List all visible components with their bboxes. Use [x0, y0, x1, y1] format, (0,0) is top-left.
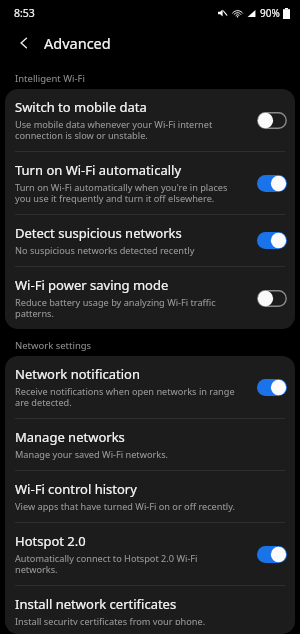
button[interactable]: Switch to mobile data: [5, 89, 295, 151]
staticText: Advanced: [44, 33, 111, 53]
staticText: Manage your saved Wi-Fi networks.: [15, 448, 169, 461]
staticText: View apps that have turned Wi-Fi on or o…: [15, 500, 235, 513]
button[interactable]: Toggle on: [257, 232, 287, 249]
staticText: Network notification: [15, 365, 140, 383]
button[interactable]: Toggle on: [257, 546, 287, 563]
staticText: 90%: [260, 6, 280, 20]
button[interactable]: Install network certificates: [5, 586, 295, 634]
staticText: Turn on Wi-Fi automatically when you're …: [15, 181, 228, 205]
staticText: Receive notifications when open networks…: [15, 385, 235, 409]
staticText: Install network certificates: [15, 595, 177, 613]
staticText: Reduce battery usage by analyzing Wi-Fi …: [15, 296, 216, 320]
staticText: Hotspot 2.0: [15, 532, 86, 550]
button[interactable]: Toggle on: [257, 175, 287, 192]
button[interactable]: Turn on Wi-Fi automatically: [5, 152, 295, 214]
button[interactable]: Back: [12, 31, 36, 55]
staticText: Wi-Fi control history: [15, 480, 137, 498]
staticText: Automatically connect to Hotspot 2.0 Wi-…: [15, 552, 198, 576]
staticText: Network settings: [15, 339, 92, 352]
button[interactable]: Wi-Fi power saving mode: [5, 267, 295, 329]
staticText: Switch to mobile data: [15, 98, 147, 116]
staticText: Detect suspicious networks: [15, 224, 182, 242]
staticText: Intelligent Wi-Fi: [15, 72, 85, 85]
button[interactable]: Toggle off: [257, 290, 287, 307]
button[interactable]: Network notification: [5, 356, 295, 418]
staticText: Use mobile data whenever your Wi-Fi inte…: [15, 118, 213, 142]
button[interactable]: Manage networks: [5, 419, 295, 470]
staticText: Wi-Fi power saving mode: [15, 276, 169, 294]
staticText: No suspicious networks detected recently: [15, 244, 195, 257]
staticText: Turn on Wi-Fi automatically: [15, 161, 182, 179]
button[interactable]: Detect suspicious networks: [5, 215, 295, 266]
button[interactable]: Toggle on: [257, 379, 287, 396]
button[interactable]: Wi-Fi control history: [5, 471, 295, 522]
button[interactable]: Toggle off: [257, 112, 287, 129]
staticText: 8:53: [14, 6, 35, 20]
button[interactable]: Hotspot 2.0: [5, 523, 295, 585]
staticText: Install security certificates from your …: [15, 615, 206, 625]
staticText: Manage networks: [15, 428, 125, 446]
